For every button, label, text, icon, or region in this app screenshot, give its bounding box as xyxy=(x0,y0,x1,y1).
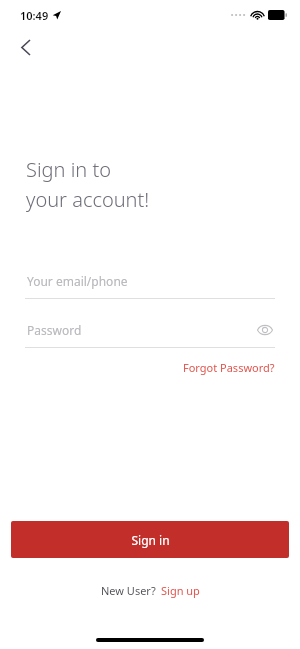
staticText: 10:49 xyxy=(20,8,49,23)
button[interactable]: Back xyxy=(8,30,42,64)
staticText: Forgot Password? xyxy=(183,360,275,375)
button[interactable]: Forgot Password? xyxy=(183,358,275,377)
button[interactable]: Show password xyxy=(255,320,275,340)
staticText: Password xyxy=(27,322,255,338)
staticText: Sign up xyxy=(161,583,200,598)
button[interactable]: Sign in xyxy=(11,521,289,558)
button[interactable]: Sign up xyxy=(161,581,200,600)
staticText: Your email/phone xyxy=(27,273,128,289)
staticText: Sign in to xyxy=(26,156,111,183)
button[interactable]: Your email/phone xyxy=(25,273,275,299)
staticText: your account! xyxy=(26,186,150,213)
staticText: New User? xyxy=(101,583,156,598)
button[interactable]: Password xyxy=(25,320,275,348)
staticText: Sign in xyxy=(131,532,170,548)
